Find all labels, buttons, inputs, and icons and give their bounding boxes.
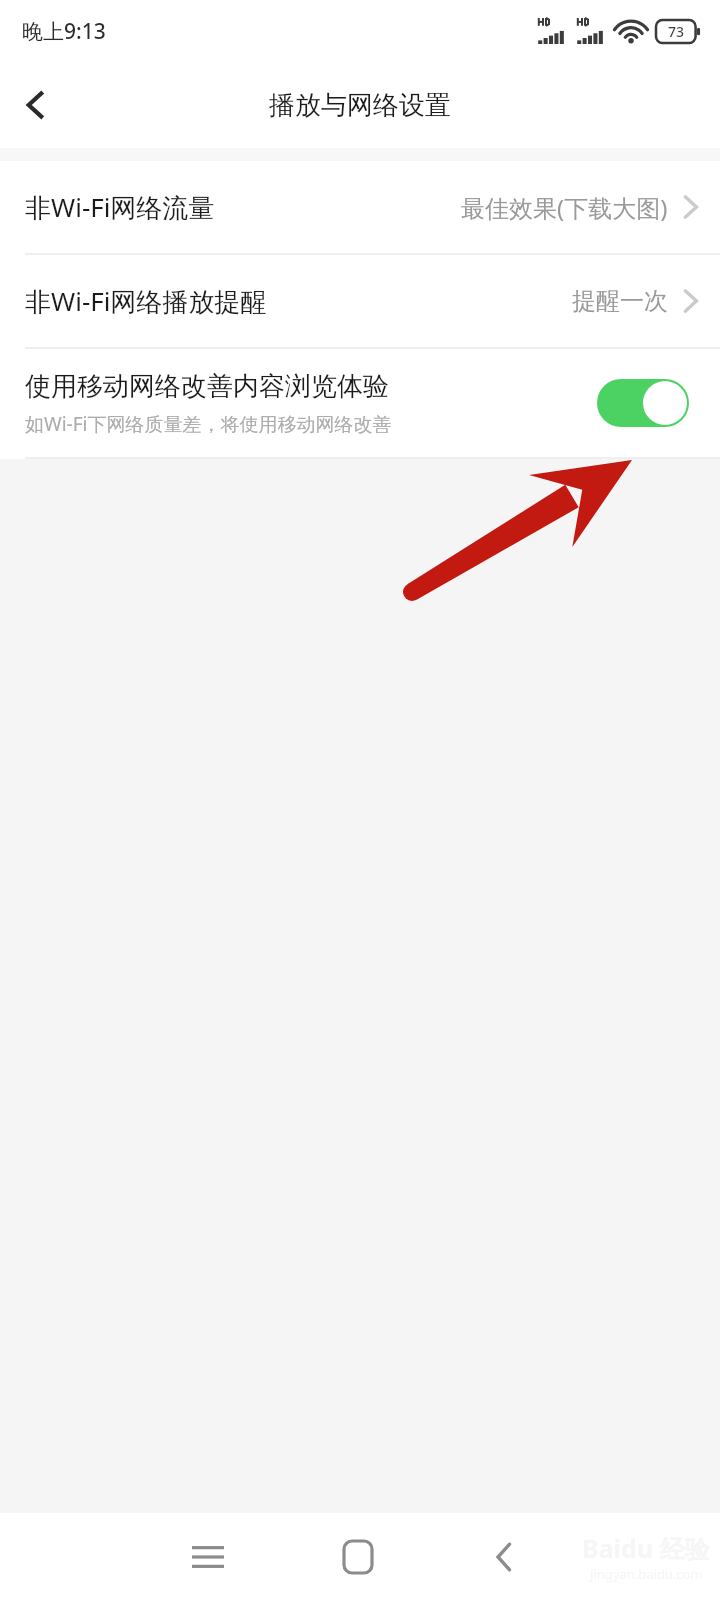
button[interactable]: 非Wi-Fi网络播放提醒 xyxy=(0,255,720,347)
button[interactable]: 返回 xyxy=(0,69,72,141)
staticText: 晚上9:13 xyxy=(22,17,106,46)
staticText: jingyan.baidu.com xyxy=(590,1565,703,1583)
staticText: 73 xyxy=(668,22,685,41)
staticText: 提醒一次 xyxy=(572,286,668,316)
button[interactable]: 返回 xyxy=(456,1513,552,1600)
staticText: Baidu 经验 xyxy=(582,1531,710,1565)
button[interactable]: 最近任务 xyxy=(160,1513,256,1600)
staticText: 播放与网络设置 xyxy=(269,89,451,122)
button[interactable]: 主页 xyxy=(310,1513,406,1600)
button[interactable]: 开关 xyxy=(596,378,690,428)
staticText: 最佳效果(下载大图) xyxy=(461,191,668,224)
staticText: 使用移动网络改善内容浏览体验 xyxy=(25,370,389,403)
button[interactable]: 使用移动网络改善内容浏览体验 xyxy=(0,349,720,457)
staticText: 非Wi-Fi网络播放提醒 xyxy=(25,283,267,319)
staticText: 非Wi-Fi网络流量 xyxy=(25,189,215,225)
button[interactable]: 非Wi-Fi网络流量 xyxy=(0,161,720,253)
staticText: 如Wi-Fi下网络质量差，将使用移动网络改善 xyxy=(25,411,392,437)
